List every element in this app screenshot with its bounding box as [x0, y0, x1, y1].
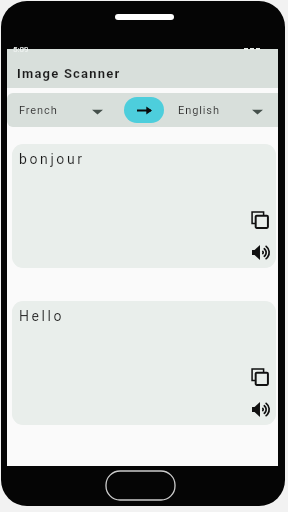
staticText: Hello — [19, 308, 65, 324]
button[interactable]: Translate — [124, 97, 164, 123]
button[interactable]: Speak — [249, 242, 275, 262]
button[interactable]: English — [177, 93, 278, 127]
button[interactable]: Copy — [247, 207, 273, 233]
button[interactable]: French — [7, 93, 111, 127]
staticText: Image Scanner — [17, 66, 121, 81]
staticText: bonjour — [19, 151, 85, 167]
button[interactable]: Copy — [247, 364, 273, 390]
staticText: English — [178, 104, 220, 117]
staticText: 5:09 — [13, 45, 29, 54]
staticText: French — [19, 104, 58, 117]
button[interactable]: Image Scanner — [7, 59, 278, 88]
button[interactable]: Hello — [12, 301, 276, 425]
button[interactable]: bonjour — [12, 144, 276, 268]
button[interactable]: Speak — [249, 399, 275, 419]
